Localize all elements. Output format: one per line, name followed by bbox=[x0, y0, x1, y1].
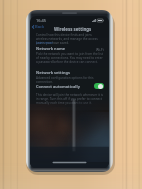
staticText: Control how this device finds and joins … bbox=[36, 33, 104, 45]
button[interactable]: Connect automatically bbox=[36, 83, 104, 89]
staticText: Network name bbox=[36, 46, 66, 51]
staticText: Pick the network you want to join from t… bbox=[36, 52, 104, 64]
staticText: Connect automatically bbox=[36, 84, 80, 89]
staticText: This device will join the network whenev… bbox=[36, 93, 104, 105]
button[interactable]: Learn more bbox=[36, 41, 53, 45]
staticText: Back bbox=[35, 24, 45, 30]
staticText: 16:45 bbox=[36, 18, 46, 23]
staticText: Wireless settings bbox=[54, 26, 92, 32]
button[interactable]: Network name bbox=[36, 45, 104, 52]
staticText: Wi-Fi bbox=[96, 47, 104, 51]
staticText: Network settings bbox=[36, 70, 70, 75]
button[interactable]: Back bbox=[30, 22, 48, 32]
button[interactable]: Network settings bbox=[36, 69, 104, 76]
staticText: Advanced configuration options for this … bbox=[36, 76, 104, 84]
